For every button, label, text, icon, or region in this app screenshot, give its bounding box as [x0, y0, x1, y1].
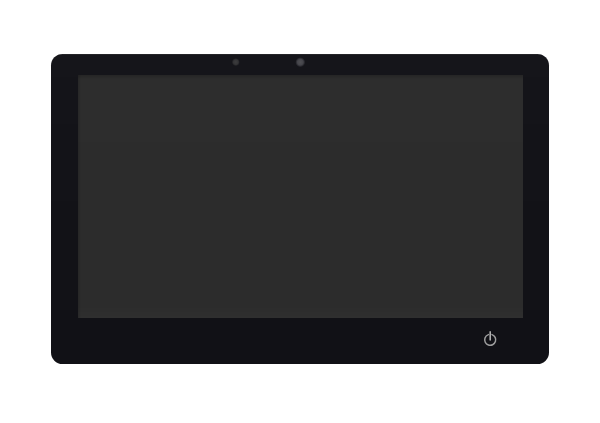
button[interactable]: Power	[477, 327, 503, 353]
